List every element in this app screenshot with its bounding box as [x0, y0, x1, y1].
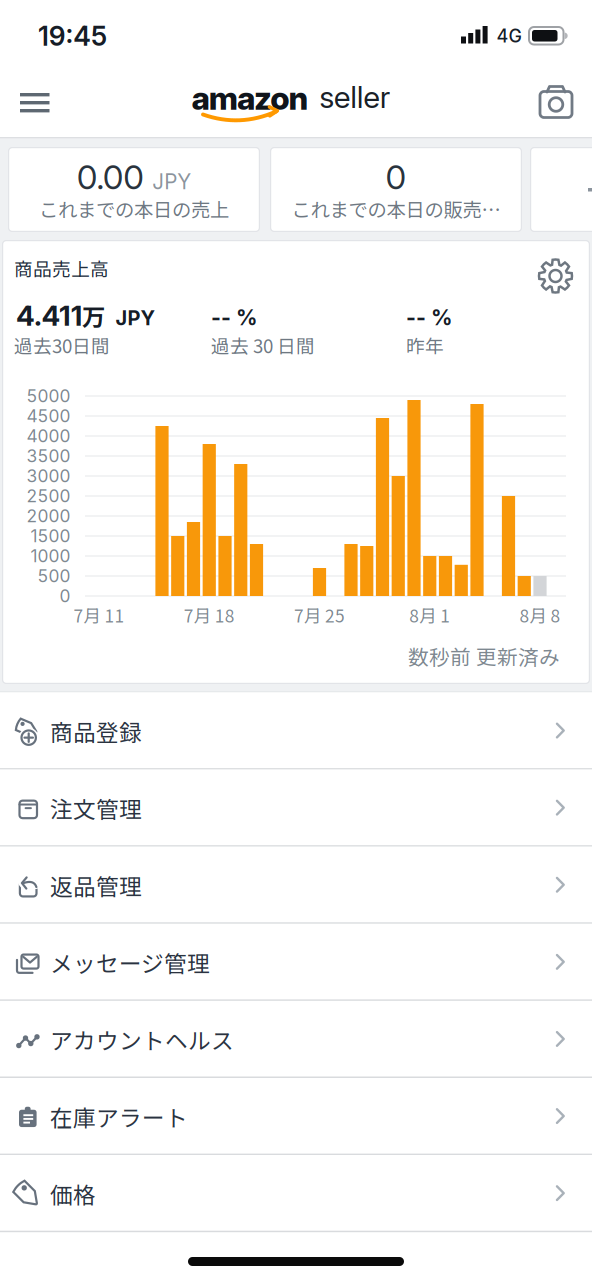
button[interactable]: 返品管理	[0, 847, 592, 922]
button[interactable]: 0.00	[8, 147, 260, 232]
button[interactable]: アカウントヘルス	[0, 1001, 592, 1076]
button[interactable]: 価格	[0, 1155, 592, 1231]
staticText: 過去30日間	[14, 331, 110, 358]
staticText: 500	[37, 565, 70, 586]
staticText: JPY	[152, 169, 191, 194]
button[interactable]: メッセージ管理	[0, 924, 592, 999]
button[interactable]: 商品登録	[0, 692, 592, 768]
button[interactable]	[530, 147, 592, 232]
staticText: 4500	[26, 405, 70, 426]
staticText: 2000	[26, 505, 70, 526]
button[interactable]: 在庫アラート	[0, 1078, 592, 1154]
staticText: 7月 11	[73, 602, 124, 628]
staticText: 万	[82, 299, 105, 332]
staticText: 5000	[26, 385, 70, 406]
staticText: これまでの本日の売上	[39, 194, 229, 222]
staticText: 3500	[26, 445, 70, 466]
staticText: 0.00	[77, 157, 144, 197]
staticText: -- %	[406, 305, 452, 330]
staticText: JPY	[115, 306, 155, 330]
staticText: 数秒前 更新済み	[408, 641, 560, 671]
staticText: 価格	[50, 1177, 96, 1210]
staticText: 19:45	[38, 20, 107, 52]
staticText: 3000	[26, 465, 70, 486]
button[interactable]: 注文管理	[0, 770, 592, 845]
staticText: 8月 8	[519, 602, 560, 628]
staticText: seller	[319, 79, 391, 115]
staticText: 2500	[26, 485, 70, 506]
staticText: 4000	[26, 425, 70, 446]
staticText: 商品売上高	[14, 254, 109, 281]
staticText: 0	[59, 585, 70, 606]
staticText: 注文管理	[50, 792, 142, 824]
staticText: 4.411	[16, 299, 83, 332]
staticText: 1000	[30, 545, 70, 566]
staticText: 7月 25	[294, 602, 345, 628]
staticText: 7月 18	[184, 602, 235, 628]
staticText: 0	[385, 157, 406, 197]
staticText: 在庫アラート	[50, 1100, 188, 1133]
staticText: 1500	[30, 525, 70, 546]
staticText: メッセージ管理	[50, 946, 210, 979]
staticText: 商品登録	[50, 715, 142, 747]
staticText: amazon	[191, 79, 308, 117]
staticText: 昨年	[406, 331, 444, 358]
button[interactable]	[2, 240, 590, 684]
staticText: アカウントヘルス	[50, 1023, 234, 1056]
staticText: 4G	[496, 25, 521, 47]
button[interactable]	[533, 254, 577, 298]
button[interactable]	[13, 77, 57, 127]
staticText: 8月 1	[409, 602, 450, 628]
button[interactable]: 0	[270, 147, 522, 232]
staticText: 返品管理	[50, 869, 142, 902]
button[interactable]	[534, 75, 578, 125]
staticText: 過去 30 日間	[211, 331, 315, 358]
staticText: これまでの本日の販売…	[291, 194, 500, 222]
staticText: -- %	[211, 305, 257, 330]
